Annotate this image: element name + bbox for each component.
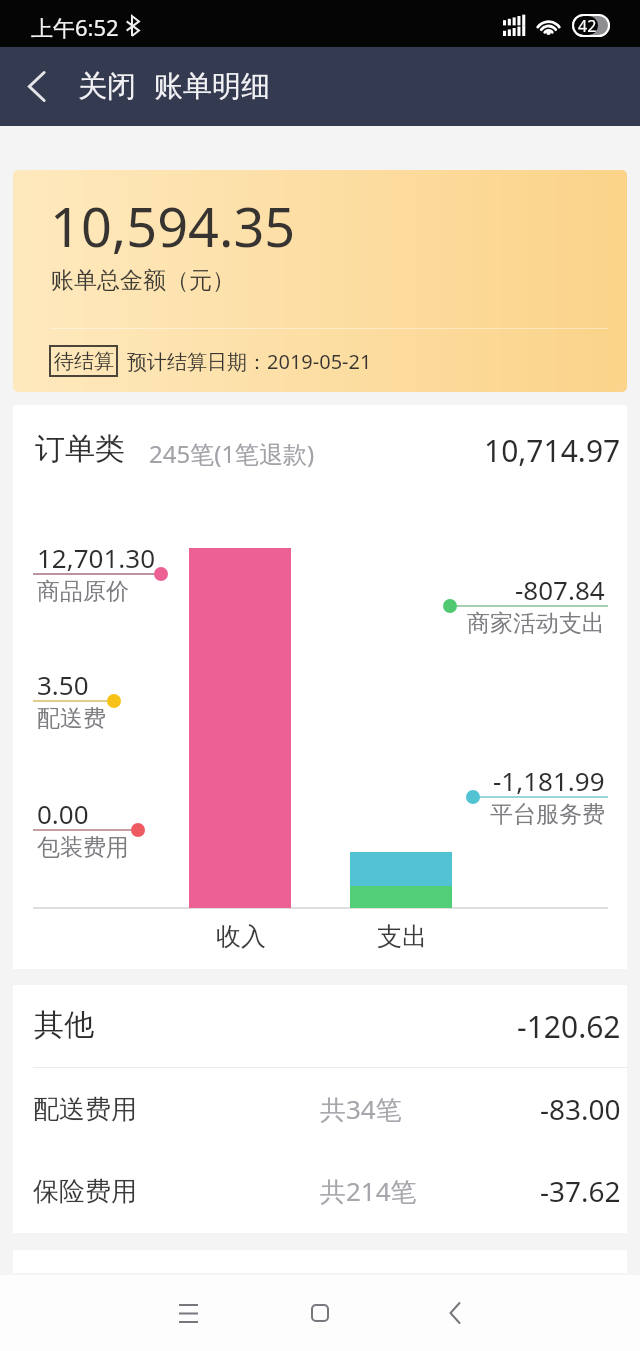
staticText: 账单明细 <box>154 68 270 105</box>
staticText: 245笔(1笔退款) <box>149 437 315 470</box>
button[interactable]: 关闭 <box>78 68 136 105</box>
staticText: 0.00 <box>37 796 89 831</box>
button[interactable]: Home <box>288 1281 352 1345</box>
staticText: -1,181.99 <box>493 763 605 798</box>
staticText: 商品原价 <box>37 577 129 606</box>
staticText: 12,701.30 <box>37 540 156 575</box>
staticText: 收入 <box>216 921 266 952</box>
button[interactable]: 其他 <box>13 985 627 1067</box>
staticText: 其他 <box>34 1006 94 1044</box>
staticText: 3.50 <box>37 667 89 702</box>
staticText: -807.84 <box>515 572 605 607</box>
staticText: 商家活动支出 <box>467 609 605 638</box>
staticText: 平台服务费 <box>490 800 605 829</box>
staticText: 42 <box>578 15 597 37</box>
staticText: 支出 <box>377 921 427 952</box>
staticText: 10,714.97 <box>484 430 621 471</box>
staticText: 10,594.35 <box>50 189 296 263</box>
button[interactable]: 配送费用 <box>13 1068 627 1150</box>
staticText: 订单类 <box>35 430 125 468</box>
staticText: 保险费用 <box>33 1175 137 1208</box>
staticText: 账单总金额（元） <box>51 266 235 295</box>
button[interactable]: 10,594.35 <box>13 170 627 392</box>
button[interactable]: Back <box>423 1281 487 1345</box>
button[interactable]: Back <box>0 47 72 126</box>
staticText: -120.62 <box>517 1006 621 1047</box>
staticText: -83.00 <box>540 1090 621 1128</box>
staticText: 配送费用 <box>33 1093 137 1126</box>
staticText: 上午6:52 <box>31 12 119 42</box>
button[interactable]: Recent apps <box>156 1281 220 1345</box>
button[interactable]: 保险费用 <box>13 1150 627 1232</box>
staticText: 包装费用 <box>37 833 129 862</box>
staticText: 共34笔 <box>320 1091 402 1127</box>
staticText: 共214笔 <box>320 1173 417 1209</box>
staticText: 配送费 <box>37 704 106 733</box>
staticText: 待结算 <box>54 349 114 374</box>
staticText: 预计结算日期：2019-05-21 <box>127 348 372 375</box>
staticText: -37.62 <box>540 1172 621 1210</box>
